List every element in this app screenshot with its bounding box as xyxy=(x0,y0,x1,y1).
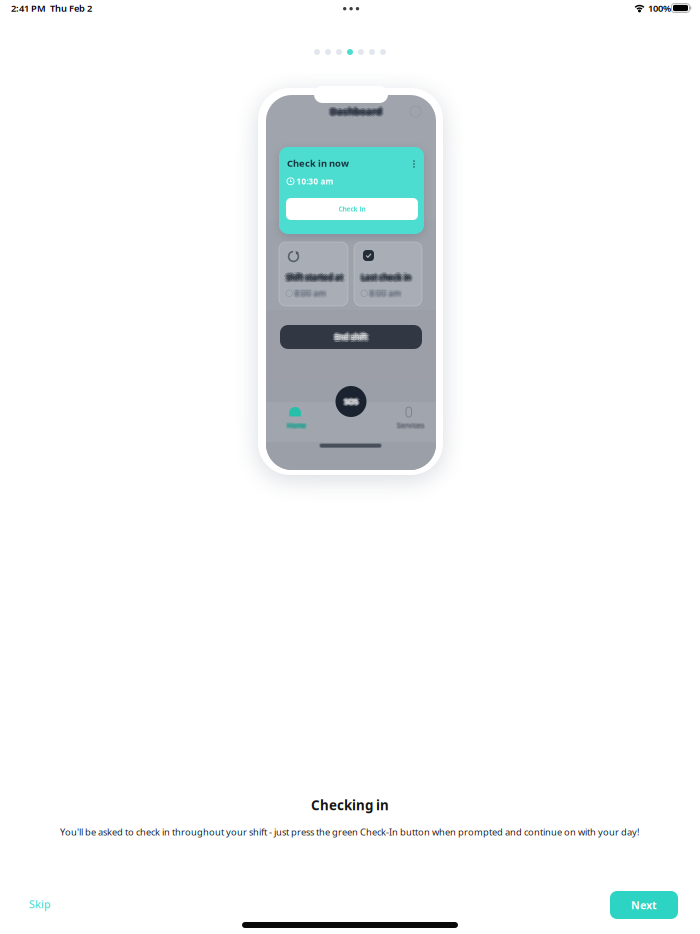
staticText: Shift started at xyxy=(288,272,345,283)
staticText: End shift xyxy=(334,333,367,344)
staticText: Shift started at xyxy=(287,272,344,283)
staticText: Services xyxy=(397,421,424,430)
staticText: Home xyxy=(286,422,305,431)
staticText: Services xyxy=(396,420,423,429)
staticText: 8:00 am xyxy=(370,288,402,299)
staticText: 8:00 am xyxy=(294,288,326,299)
staticText: Shift started at xyxy=(285,272,342,283)
staticText: Services xyxy=(397,422,424,431)
staticText: 8:00 am xyxy=(371,289,403,300)
staticText: Last check in xyxy=(362,273,412,284)
staticText: 8:00 am xyxy=(293,287,325,297)
staticText: 8:00 am xyxy=(296,288,328,299)
staticText: 8:00 am xyxy=(369,288,401,299)
staticText: Last check in xyxy=(360,273,410,284)
staticText: Last check in xyxy=(361,270,411,281)
staticText: SOS xyxy=(344,396,358,407)
staticText: Last check in xyxy=(359,272,409,283)
button[interactable]: Page 4, current page xyxy=(347,49,353,55)
staticText: Services xyxy=(397,421,424,430)
button[interactable]: Go to page xyxy=(369,49,375,55)
staticText: Checking in xyxy=(311,796,389,814)
staticText: Home xyxy=(288,422,307,431)
button[interactable]: Check in xyxy=(286,198,418,220)
staticText: Dashboard xyxy=(330,107,382,119)
staticText: Dashboard xyxy=(329,106,381,119)
staticText: Check in now xyxy=(287,157,349,169)
staticText: Last check in xyxy=(360,271,410,281)
button[interactable]: Go to page xyxy=(314,49,320,55)
staticText: Shift started at xyxy=(287,273,344,284)
staticText: End shift xyxy=(333,333,366,344)
staticText: SOS xyxy=(344,398,358,408)
staticText: Next xyxy=(631,898,657,912)
staticText: End shift xyxy=(337,332,370,342)
staticText: 8:00 am xyxy=(368,287,400,297)
staticText: End shift xyxy=(336,330,369,341)
staticText: End shift xyxy=(334,332,367,342)
staticText: 8:00 am xyxy=(293,289,325,300)
staticText: Shift started at xyxy=(286,274,343,284)
staticText: Last check in xyxy=(362,272,412,283)
staticText: 8:00 am xyxy=(296,289,328,300)
staticText: Dashboard xyxy=(328,105,380,117)
button[interactable]: Close xyxy=(410,106,421,117)
staticText: 8:00 am xyxy=(371,287,403,297)
staticText: Home xyxy=(288,420,307,429)
staticText: SOS xyxy=(343,395,357,406)
staticText: SOS xyxy=(344,396,358,407)
staticText: Services xyxy=(395,421,422,430)
staticText: 8:00 am xyxy=(294,288,326,299)
staticText: Last check in xyxy=(361,272,411,283)
button[interactable]: Next xyxy=(610,891,678,919)
staticText: SOS xyxy=(342,396,356,407)
button[interactable]: Go to page xyxy=(336,49,342,55)
button[interactable]: Services xyxy=(389,407,429,435)
staticText: Home xyxy=(289,421,308,430)
staticText: You'll be asked to check in throughout y… xyxy=(60,826,640,838)
staticText: SOS xyxy=(345,395,359,406)
staticText: 8:00 am xyxy=(371,288,403,299)
staticText: 100% xyxy=(648,2,671,14)
staticText: End shift xyxy=(334,330,367,340)
staticText: 8:00 am xyxy=(367,288,399,299)
button[interactable]: Go to page xyxy=(380,49,386,55)
staticText: Skip xyxy=(29,897,51,911)
staticText: Services xyxy=(397,420,424,429)
button[interactable]: Home xyxy=(278,407,314,435)
button[interactable]: Go to page xyxy=(325,49,331,55)
staticText: Thu Feb 2 xyxy=(50,2,92,14)
staticText: Shift started at xyxy=(286,272,343,283)
staticText: 8:00 am xyxy=(369,288,401,299)
button[interactable]: SOS xyxy=(335,386,366,417)
staticText: 8:00 am xyxy=(294,286,326,297)
staticText: End shift xyxy=(332,332,365,342)
staticText: SOS xyxy=(344,396,358,407)
staticText: Dashboard xyxy=(329,104,381,116)
staticText: 8:00 am xyxy=(294,289,326,300)
button[interactable]: Go to page xyxy=(358,49,364,55)
staticText: End shift xyxy=(334,332,367,342)
staticText: End shift xyxy=(336,333,369,344)
staticText: Dashboard xyxy=(330,105,382,117)
button[interactable]: More options xyxy=(409,157,419,171)
staticText: Last check in xyxy=(360,272,410,283)
staticText: SOS xyxy=(343,397,357,408)
staticText: Services xyxy=(397,421,424,430)
staticText: End shift xyxy=(333,330,366,341)
staticText: End shift xyxy=(335,332,368,342)
staticText: Home xyxy=(285,421,304,430)
staticText: SOS xyxy=(346,396,360,407)
staticText: 8:00 am xyxy=(295,288,327,299)
staticText: 8:00 am xyxy=(369,289,401,300)
staticText: Dashboard xyxy=(329,105,381,117)
button[interactable]: Skip xyxy=(14,889,66,919)
staticText: Home xyxy=(286,420,305,429)
staticText: Shift started at xyxy=(287,271,344,281)
staticText: Services xyxy=(399,421,426,430)
staticText: SOS xyxy=(344,395,358,405)
staticText: Dashboard xyxy=(331,106,383,119)
staticText: Dashboard xyxy=(331,105,383,117)
staticText: Services xyxy=(398,420,425,429)
staticText: 8:00 am xyxy=(369,286,401,297)
